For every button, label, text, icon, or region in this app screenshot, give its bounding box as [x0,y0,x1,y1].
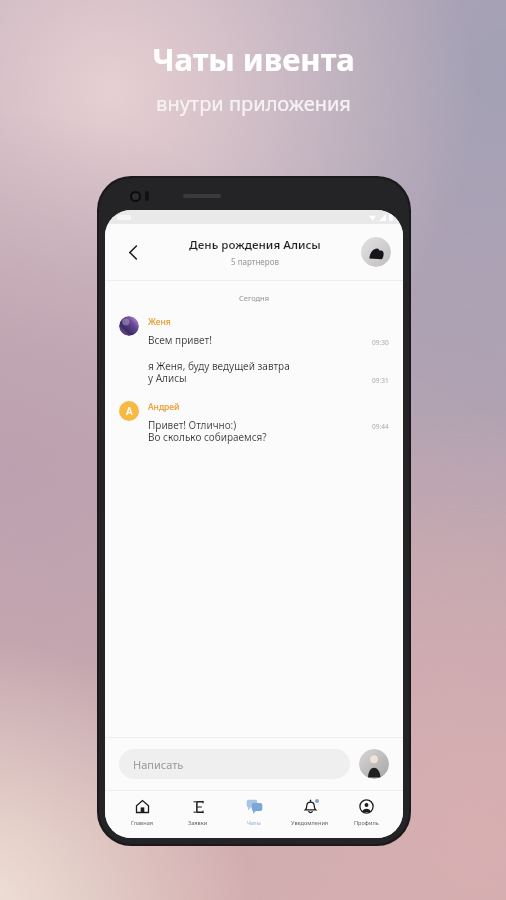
button[interactable]: Your profile [359,749,389,779]
button[interactable]: Заявки [170,791,226,838]
button[interactable]: Chat info [361,237,391,267]
staticText: Чаты ивента [152,38,355,80]
staticText: Привет! Отлично:) Во сколько собираемся? [148,418,372,444]
staticText: Профиль [354,819,379,827]
staticText: 5 партнеров [231,256,279,267]
staticText: 09:31 [372,376,389,385]
staticText: Написать [133,757,184,772]
staticText: Заявки [188,819,208,827]
staticText: 09:44 [372,422,389,431]
button[interactable]: Написать [119,749,350,779]
staticText: Главная [131,819,154,827]
staticText: Андрей [148,401,180,413]
button[interactable]: Back [117,236,149,268]
staticText: 09:30 [372,338,389,347]
staticText: Уведомления [291,819,329,827]
button[interactable]: Чаты [226,791,282,838]
staticText: A [126,404,133,418]
staticText: внутри приложения [156,90,351,117]
staticText: Женя [148,316,171,328]
button[interactable]: Уведомления [282,791,338,838]
staticText: Всем привет! [148,333,372,347]
staticText: Сегодня [105,293,403,303]
staticText: Чаты [247,819,261,827]
button[interactable]: Главная [114,791,170,838]
staticText: День рождения Алисы [189,237,321,253]
staticText: я Женя, буду ведущей завтра у Алисы [148,359,372,385]
button[interactable]: Профиль [338,791,394,838]
